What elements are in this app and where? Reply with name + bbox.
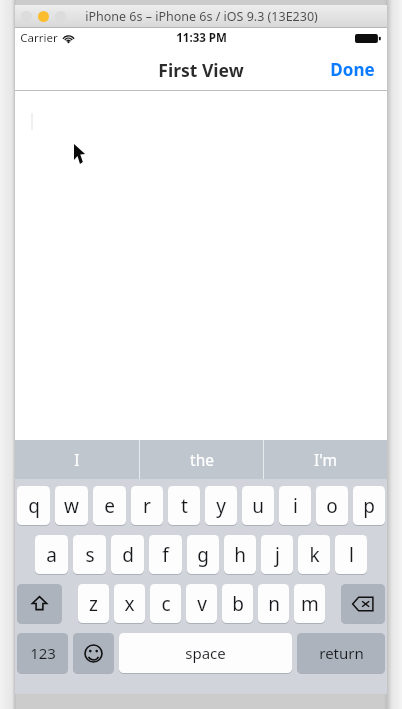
button[interactable]: l — [335, 535, 367, 574]
button[interactable]: w — [55, 486, 88, 525]
staticText: iPhone 6s – iPhone 6s / iOS 9.3 (13E230) — [85, 8, 318, 25]
button[interactable]: o — [316, 486, 348, 525]
button[interactable]: d — [111, 535, 144, 574]
button[interactable]: Shift — [17, 584, 62, 623]
button[interactable]: return — [297, 633, 385, 673]
button[interactable]: y — [205, 486, 237, 525]
staticText: First View — [158, 58, 244, 82]
staticText: w — [64, 493, 79, 519]
staticText: the — [190, 449, 214, 470]
staticText: p — [363, 493, 375, 519]
button[interactable]: space — [119, 633, 292, 673]
staticText: s — [85, 542, 95, 568]
staticText: o — [326, 493, 338, 519]
button[interactable]: I — [15, 440, 139, 479]
button[interactable]: Numbers — [17, 633, 68, 673]
button[interactable]: I'm — [264, 440, 387, 479]
button[interactable]: k — [298, 535, 330, 574]
staticText: r — [143, 493, 151, 519]
button[interactable]: u — [242, 486, 274, 525]
button[interactable]: the — [140, 440, 263, 479]
staticText: d — [122, 542, 134, 568]
staticText: u — [252, 493, 264, 519]
button[interactable]: v — [186, 584, 217, 623]
staticText: k — [309, 542, 320, 568]
staticText: j — [275, 542, 280, 568]
staticText: Done — [330, 58, 375, 81]
staticText: Carrier — [20, 30, 58, 46]
staticText: t — [181, 493, 188, 519]
staticText: return — [319, 643, 364, 663]
button[interactable]: Delete — [341, 584, 385, 623]
staticText: n — [268, 591, 280, 617]
button[interactable]: r — [131, 486, 163, 525]
staticText: g — [197, 542, 209, 568]
staticText: c — [161, 591, 171, 617]
staticText: v — [197, 591, 207, 617]
button[interactable]: g — [187, 535, 219, 574]
staticText: e — [104, 493, 115, 519]
staticText: q — [28, 493, 40, 519]
button[interactable]: Minimize — [38, 11, 49, 22]
button[interactable]: s — [73, 535, 106, 574]
button[interactable]: a — [35, 535, 68, 574]
button[interactable]: j — [261, 535, 293, 574]
button[interactable]: h — [224, 535, 256, 574]
button[interactable]: n — [258, 584, 289, 623]
staticText: I'm — [314, 449, 337, 470]
staticText: b — [232, 591, 244, 617]
staticText: f — [162, 542, 169, 568]
button[interactable]: z — [78, 584, 109, 623]
staticText: 123 — [30, 643, 56, 663]
button[interactable]: t — [168, 486, 200, 525]
button[interactable]: q — [17, 486, 50, 525]
staticText: I — [74, 449, 80, 470]
staticText: space — [185, 643, 226, 663]
staticText: z — [89, 591, 98, 617]
button[interactable]: f — [149, 535, 182, 574]
button[interactable]: b — [222, 584, 253, 623]
button[interactable]: x — [114, 584, 145, 623]
staticText: i — [293, 493, 298, 519]
button[interactable]: i — [279, 486, 311, 525]
button[interactable]: m — [294, 584, 325, 623]
button[interactable]: p — [353, 486, 385, 525]
staticText: 11:33 PM — [176, 30, 227, 46]
staticText: l — [349, 542, 354, 568]
button[interactable]: Done — [326, 52, 379, 87]
staticText: m — [301, 591, 319, 617]
staticText: x — [124, 591, 135, 617]
button[interactable]: Emoji — [73, 633, 114, 673]
staticText: h — [234, 542, 246, 568]
button[interactable]: c — [150, 584, 181, 623]
staticText: y — [216, 493, 226, 519]
button[interactable]: e — [93, 486, 126, 525]
staticText: a — [46, 542, 57, 568]
